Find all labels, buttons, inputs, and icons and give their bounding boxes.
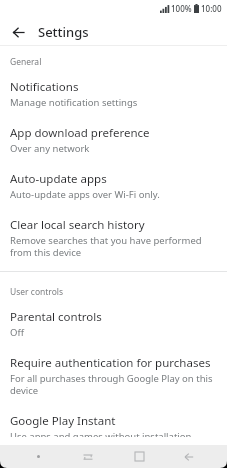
button[interactable]: Clear local search history [0,209,227,267]
staticText: User controls [10,286,64,298]
staticText: Off [10,326,24,339]
button[interactable]: Require authentication for purchases [0,347,227,405]
staticText: Manage notification settings [10,96,138,109]
button[interactable]: Auto-update apps [0,163,227,209]
staticText: Remove searches that you have performed … [10,234,215,259]
staticText: Google Play Instant [10,413,116,429]
staticText: General [10,56,42,68]
button[interactable]: Navigate up [6,20,30,44]
staticText: Parental controls [10,309,102,325]
staticText: Settings [38,23,89,41]
button[interactable]: Back [176,445,202,468]
staticText: Use apps and games without installation [10,430,192,437]
staticText: 100% [171,3,192,14]
staticText: Auto-update apps [10,171,107,187]
button[interactable]: Recent apps [75,445,101,468]
button[interactable]: Hide keyboard [25,445,51,468]
staticText: 10:00 [201,3,222,14]
button[interactable]: Google Play Instant [0,405,227,445]
button[interactable]: App download preference [0,117,227,163]
staticText: Notifications [10,79,79,95]
button[interactable]: Notifications [0,71,227,117]
staticText: Clear local search history [10,217,145,233]
staticText: Require authentication for purchases [10,355,211,371]
button[interactable]: Parental controls [0,301,227,347]
staticText: Over any network [10,142,90,155]
staticText: App download preference [10,125,150,141]
staticText: For all purchases through Google Play on… [10,372,215,397]
staticText: Auto-update apps over Wi-Fi only. [10,188,160,201]
button[interactable]: Home [126,445,152,468]
